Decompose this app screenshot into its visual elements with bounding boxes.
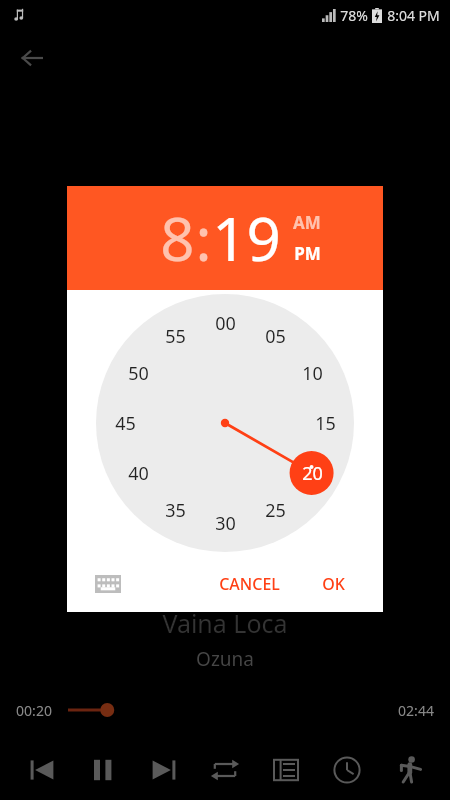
staticText: 8 bbox=[160, 197, 195, 279]
button[interactable]: Sleep timer bbox=[322, 745, 372, 795]
button[interactable]: 8 bbox=[160, 197, 195, 279]
staticText: 05 bbox=[265, 324, 286, 349]
staticText: 25 bbox=[265, 498, 286, 523]
staticText: 19 bbox=[212, 197, 281, 279]
button[interactable]: Repeat bbox=[200, 745, 250, 795]
staticText: 20 bbox=[302, 461, 323, 486]
staticText: 15 bbox=[315, 411, 336, 436]
staticText: 00 bbox=[215, 311, 236, 336]
staticText: 45 bbox=[115, 411, 136, 436]
staticText: 02:44 bbox=[398, 701, 434, 720]
staticText: 40 bbox=[128, 461, 149, 486]
staticText: PM bbox=[294, 242, 321, 265]
button[interactable]: Playlist bbox=[261, 745, 311, 795]
button[interactable]: Minute selector bbox=[96, 294, 354, 552]
staticText: OK bbox=[322, 573, 345, 595]
button[interactable]: OK bbox=[314, 565, 353, 603]
staticText: CANCEL bbox=[219, 573, 280, 595]
staticText: 30 bbox=[215, 511, 236, 536]
button[interactable]: AM bbox=[291, 211, 323, 234]
button[interactable]: PM bbox=[292, 242, 323, 265]
button[interactable]: Keyboard input bbox=[91, 567, 125, 601]
staticText: : bbox=[195, 197, 212, 279]
button[interactable]: 19 bbox=[212, 197, 281, 279]
staticText: Ozuna bbox=[196, 646, 254, 672]
button[interactable]: Previous bbox=[17, 745, 67, 795]
button[interactable]: CANCEL bbox=[211, 565, 288, 603]
button[interactable]: Next bbox=[139, 745, 189, 795]
staticText: 35 bbox=[165, 498, 186, 523]
staticText: Vaina Loca bbox=[162, 606, 288, 640]
staticText: AM bbox=[293, 211, 321, 234]
staticText: 78% bbox=[340, 6, 368, 25]
button[interactable]: Back bbox=[10, 36, 54, 80]
staticText: 00:20 bbox=[16, 701, 52, 720]
staticText: 8:04 PM bbox=[387, 6, 440, 25]
staticText: 10 bbox=[302, 361, 323, 386]
button[interactable]: Walking mode bbox=[383, 745, 433, 795]
staticText: 55 bbox=[165, 324, 186, 349]
button[interactable]: Pause bbox=[78, 745, 128, 795]
staticText: 50 bbox=[128, 361, 149, 386]
